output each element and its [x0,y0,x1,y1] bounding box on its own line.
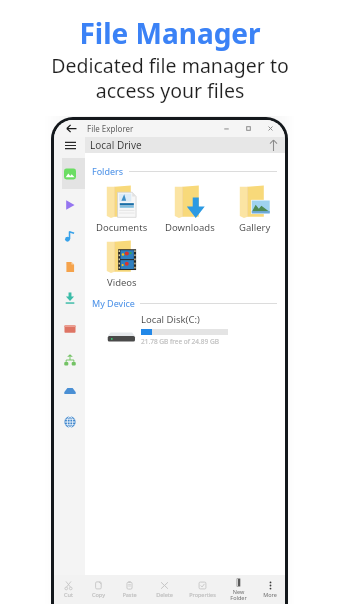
button[interactable]: Downloads [54,282,85,313]
button[interactable]: Videos [54,189,85,220]
staticText: Folders [92,165,124,177]
staticText: Copy [92,591,105,598]
staticText: Properties [189,591,216,598]
button[interactable]: New Folder [222,575,255,604]
button[interactable]: Cloud [54,406,85,437]
staticText: Cut [64,591,73,598]
button[interactable]: Menu [63,138,77,152]
staticText: Local Drive [90,138,142,152]
button[interactable]: Copy [83,575,113,604]
button[interactable]: Documents [88,185,156,234]
staticText: Local Disk(C:) [141,313,200,326]
staticText: Downloads [165,221,215,234]
button[interactable]: Videos [88,240,156,289]
staticText: Documents [96,221,148,234]
button[interactable]: Minimize [215,120,237,137]
staticText: My Device [92,297,135,309]
button[interactable]: Close [259,120,281,137]
staticText: Delete [156,591,173,598]
button[interactable]: Network [54,344,85,375]
staticText: Gallery [239,221,271,234]
button[interactable]: Downloads [156,185,224,234]
staticText: 21.78 GB free of 24.89 GB [141,337,219,346]
staticText: File Explorer [87,123,134,134]
staticText: Paste [122,591,137,598]
button[interactable]: Cut [54,575,83,604]
button[interactable]: More [255,575,285,604]
staticText: More [263,591,277,598]
button[interactable]: Images [54,158,85,189]
staticText: Dedicated file manager to access your fi… [51,52,289,103]
button[interactable]: Properties [183,575,222,604]
button[interactable]: Documents [54,251,85,282]
button[interactable]: Delete [146,575,183,604]
button[interactable]: Archives [54,313,85,344]
button[interactable]: Local Disk(C:) [106,313,263,346]
button[interactable]: Back [64,121,79,136]
button[interactable]: Maximize [237,120,259,137]
staticText: New Folder [230,588,247,602]
button[interactable]: Paste [113,575,146,604]
staticText: Videos [107,276,137,289]
button[interactable]: Drives [54,375,85,406]
button[interactable]: Music [54,220,85,251]
button[interactable]: Up one level [266,138,280,152]
staticText: File Manager [79,14,261,52]
button[interactable]: Gallery [224,185,285,234]
